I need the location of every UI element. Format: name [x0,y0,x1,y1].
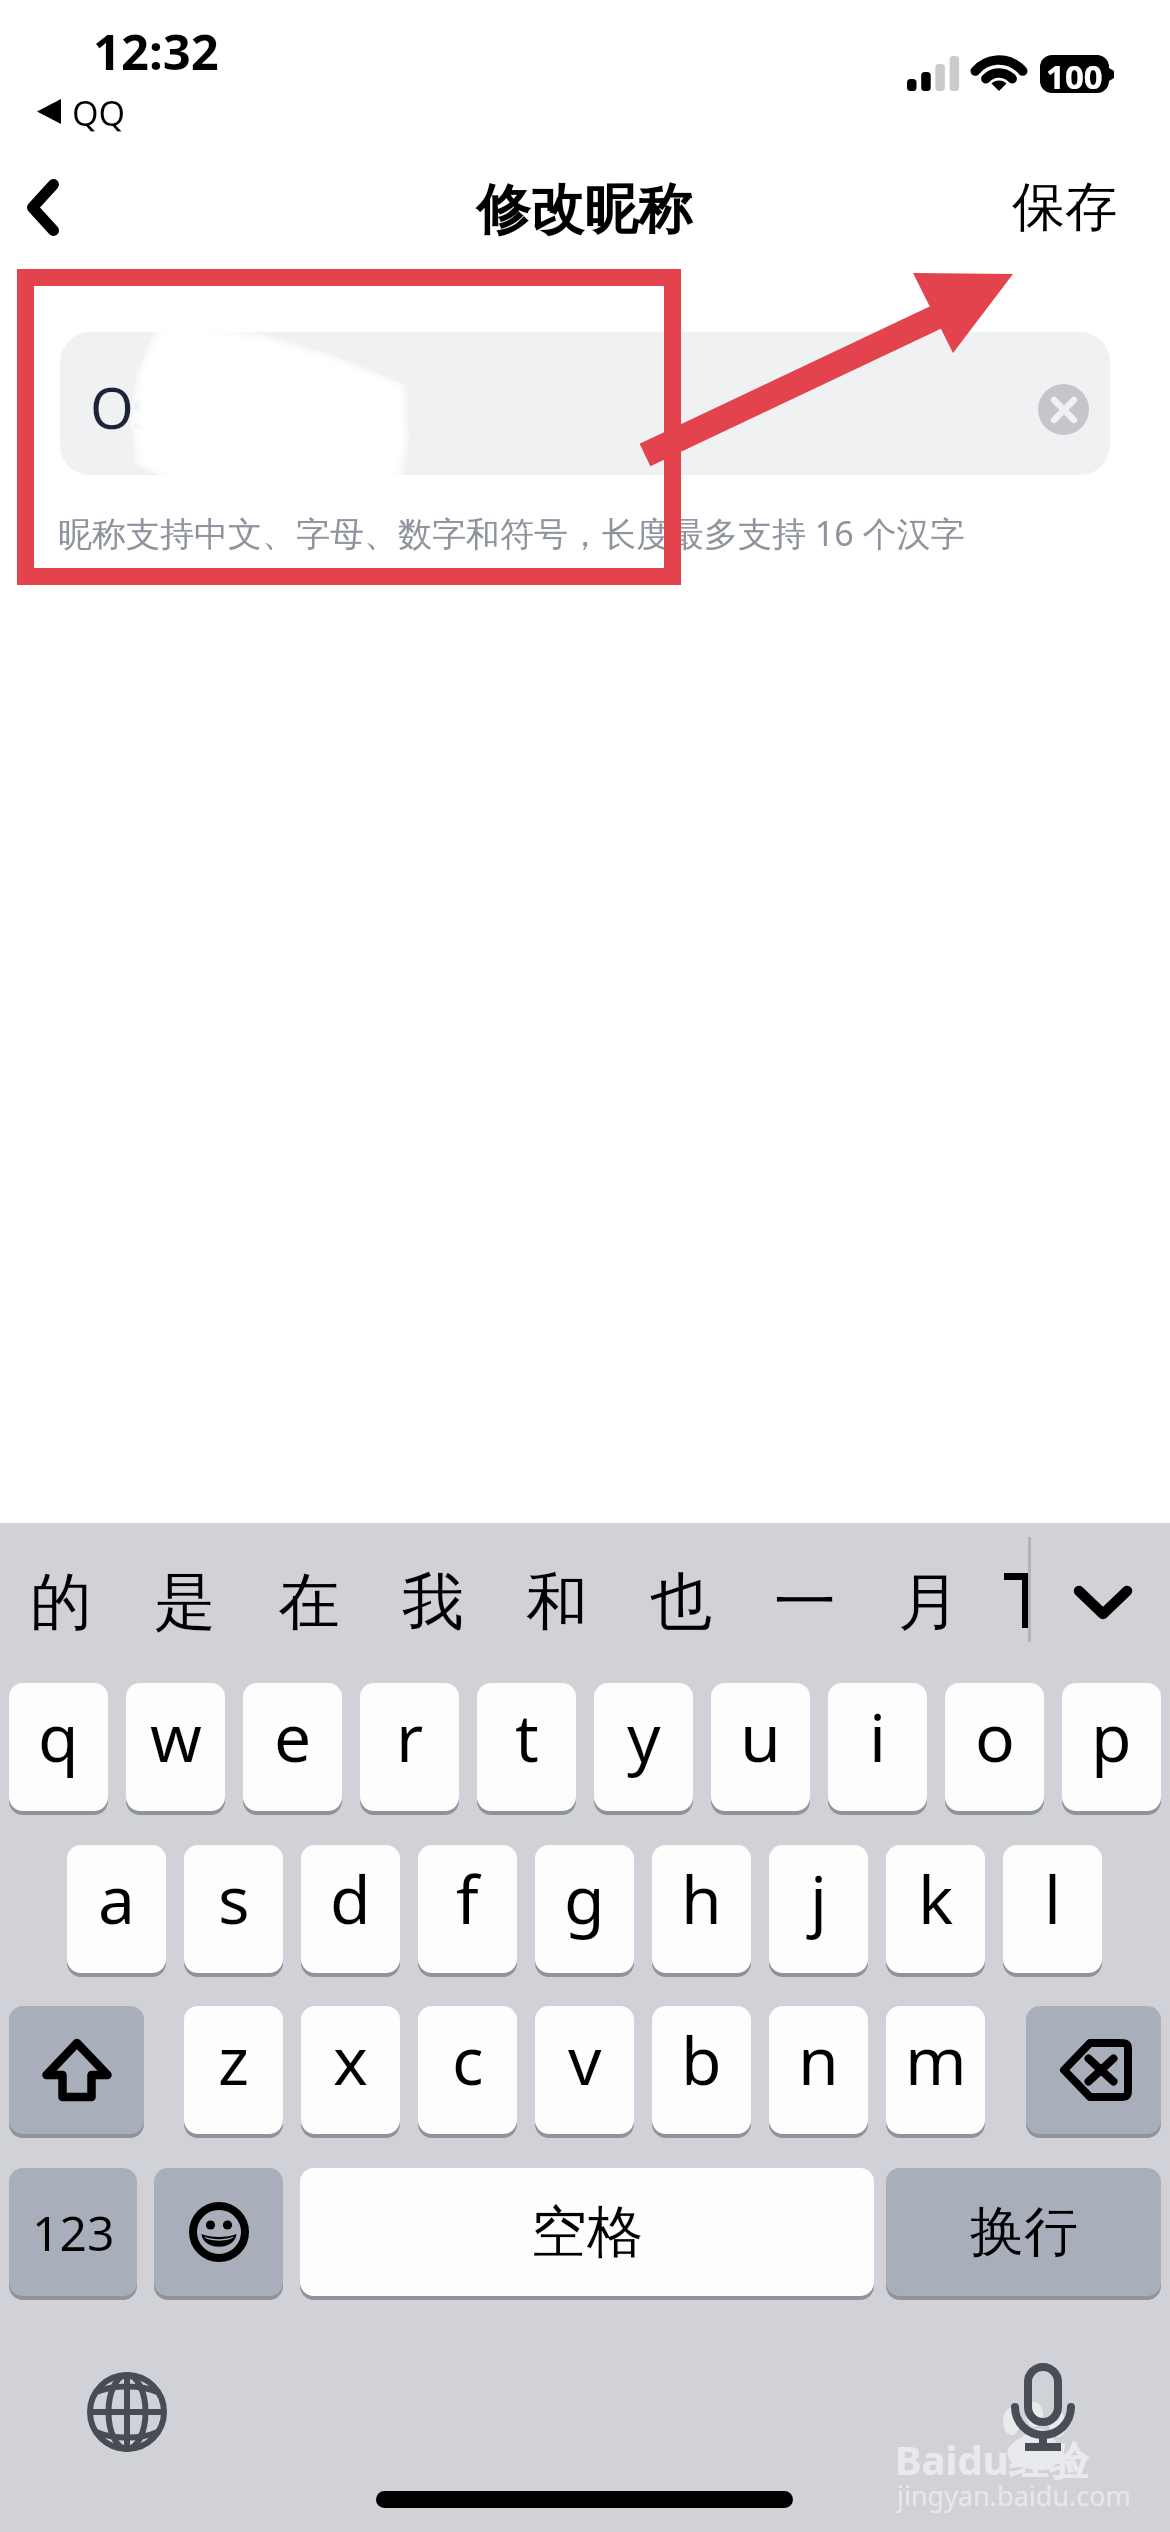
staticText: n [798,2014,839,2104]
staticText: jingyan.baidu.com [897,2477,1131,2514]
button[interactable]: o [945,1683,1044,1811]
button[interactable]: x [301,2006,400,2134]
staticText: 12:32 [93,18,219,85]
button[interactable]: s [184,1845,283,1973]
button[interactable]: k [886,1845,985,1973]
staticText: e [274,1691,312,1781]
button[interactable]: q [9,1683,108,1811]
button[interactable]: n [769,2006,868,2134]
staticText: y [627,1691,661,1781]
staticText: x [333,2014,368,2104]
staticText: a [98,1853,136,1943]
staticText: 我 [402,1563,464,1641]
staticText: v [568,2014,602,2104]
staticText: f [456,1853,479,1943]
staticText: Baidu经验 [895,2432,1089,2487]
staticText: l [1044,1853,1062,1943]
staticText: s [218,1853,250,1943]
staticText: g [564,1853,605,1943]
button[interactable]: Dictation [1000,2360,1086,2456]
staticText: j [810,1853,828,1943]
button[interactable]: w [126,1683,225,1811]
button[interactable]: v [535,2006,634,2134]
staticText: p [1091,1691,1132,1781]
button[interactable]: r [360,1683,459,1811]
button[interactable]: a [67,1845,166,1973]
button[interactable]: Switch keyboard language [84,2369,170,2455]
staticText: 在 [278,1563,340,1641]
staticText: 和 [526,1563,588,1641]
button[interactable]: Back [0,152,110,262]
staticText: 123 [32,2200,115,2265]
button[interactable]: g [535,1845,634,1973]
button[interactable]: Hide candidates [1053,1552,1153,1652]
button[interactable]: 一 [755,1552,855,1652]
staticText: k [918,1853,954,1943]
staticText: QQ [72,90,126,136]
staticText: i [869,1691,887,1781]
staticText: o [975,1691,1015,1781]
button[interactable]: c [418,2006,517,2134]
button[interactable]: 换行 [886,2168,1161,2296]
staticText: w [150,1691,202,1781]
button[interactable]: 和 [507,1552,607,1652]
button[interactable]: Clear text [1038,384,1089,435]
button[interactable]: 在 [259,1552,359,1652]
button[interactable]: h [652,1845,751,1973]
button[interactable]: p [1062,1683,1161,1811]
button[interactable]: 是 [135,1552,235,1652]
button[interactable]: j [769,1845,868,1973]
staticText: q [38,1691,79,1781]
button[interactable]: b [652,2006,751,2134]
button[interactable]: m [886,2006,985,2134]
button[interactable]: Backspace [1026,2006,1161,2134]
button[interactable]: 我 [383,1552,483,1652]
button[interactable]: 月 [879,1552,979,1652]
button[interactable]: 的 [11,1552,111,1652]
button[interactable]: u [711,1683,810,1811]
button[interactable]: l [1003,1845,1102,1973]
staticText: t [515,1691,539,1781]
staticText: 昵称支持中文、字母、数字和符号，长度最多支持 16 个汉字 [58,510,965,556]
button[interactable]: 空格 [300,2168,874,2296]
staticText: b [681,2014,722,2104]
staticText: 空格 [531,2197,643,2268]
staticText: m [905,2014,967,2104]
staticText: 换行 [970,2198,1078,2266]
button[interactable]: Emoji [154,2168,283,2296]
staticText: 是 [154,1563,216,1641]
staticText: 一 [774,1563,836,1641]
staticText: r [396,1691,424,1781]
staticText: h [681,1853,722,1943]
staticText: O [90,369,134,445]
staticText: 修改昵称 [476,176,692,244]
button[interactable]: Numbers [9,2168,137,2296]
button[interactable]: O [60,332,1110,475]
button[interactable]: d [301,1845,400,1973]
staticText: d [330,1853,371,1943]
button[interactable]: y [594,1683,693,1811]
staticText: s [132,369,159,445]
button[interactable]: e [243,1683,342,1811]
button[interactable]: Shift [9,2006,144,2134]
button[interactable]: z [184,2006,283,2134]
staticText: 也 [650,1563,712,1641]
staticText: 月 [898,1563,960,1641]
button[interactable]: t [477,1683,576,1811]
button[interactable]: 也 [631,1552,731,1652]
staticText: 的 [30,1563,92,1641]
button[interactable]: i [828,1683,927,1811]
staticText: c [452,2014,484,2104]
staticText: u [740,1691,781,1781]
staticText: 保存 [1012,174,1118,241]
button[interactable]: f [418,1845,517,1973]
staticText: z [218,2014,250,2104]
staticText: 100 [1046,54,1103,92]
button[interactable]: 保存 [990,160,1140,255]
